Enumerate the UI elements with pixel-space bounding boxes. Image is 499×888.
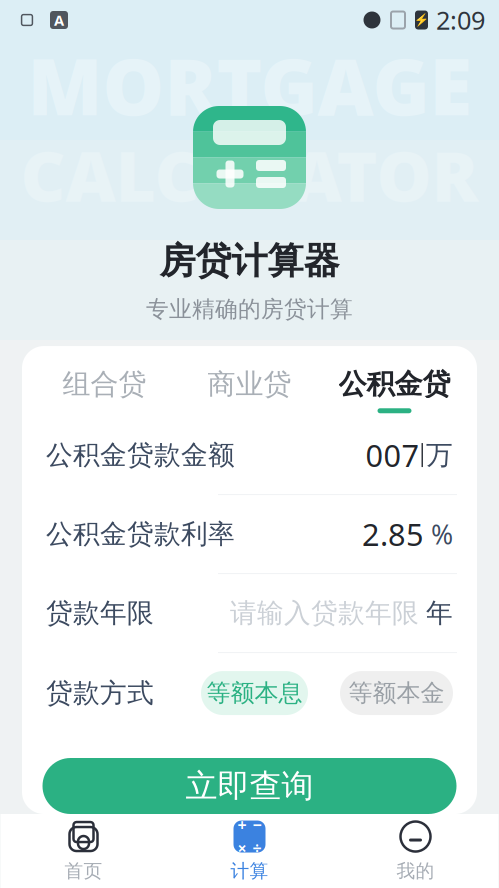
- staticText: −: [252, 814, 261, 835]
- staticText: +: [237, 814, 246, 835]
- staticText: 专业精确的房贷计算: [146, 295, 353, 323]
- staticText: 立即查询: [185, 766, 313, 806]
- staticText: 公积金贷款金额: [46, 439, 235, 471]
- staticText: ÷: [252, 837, 261, 859]
- button[interactable]: 我的: [332, 814, 498, 888]
- staticText: 万: [426, 439, 453, 471]
- staticText: A: [54, 10, 64, 30]
- staticText: %: [431, 516, 453, 552]
- staticText: ×: [237, 837, 246, 859]
- staticText: CALCULATOR: [20, 129, 478, 221]
- staticText: 等额本息: [206, 678, 302, 708]
- staticText: 商业贷: [207, 367, 291, 401]
- button[interactable]: 等额本息: [201, 671, 308, 715]
- button[interactable]: 首页: [0, 814, 166, 888]
- staticText: 007: [365, 435, 419, 475]
- staticText: 等额本金: [348, 678, 444, 708]
- button[interactable]: 组合贷: [32, 364, 177, 416]
- staticText: 我的: [396, 859, 434, 882]
- staticText: 贷款方式: [46, 677, 154, 709]
- staticText: 2.85: [362, 514, 424, 554]
- staticText: 计算: [230, 859, 268, 882]
- button[interactable]: 等额本金: [340, 671, 453, 715]
- button[interactable]: 立即查询: [42, 758, 456, 814]
- staticText: 公积金贷: [338, 367, 450, 401]
- staticText: MORTGAGE: [27, 34, 471, 137]
- staticText: 首页: [64, 859, 102, 882]
- staticText: 年: [426, 597, 453, 629]
- button[interactable]: 公积金贷款金额: [22, 416, 477, 494]
- staticText: 公积金贷款利率: [46, 518, 235, 550]
- staticText: 房贷计算器: [159, 239, 339, 283]
- staticText: 组合贷: [62, 367, 146, 401]
- button[interactable]: 公积金贷: [322, 364, 467, 416]
- staticText: 贷款年限: [46, 597, 154, 629]
- staticText: 2:09: [436, 3, 485, 37]
- button[interactable]: 贷款年限: [22, 574, 477, 652]
- button[interactable]: 商业贷: [177, 364, 322, 416]
- button[interactable]: 公积金贷款利率: [22, 495, 477, 573]
- staticText: 请输入贷款年限: [230, 597, 419, 629]
- staticText: ⚡: [414, 13, 429, 27]
- button[interactable]: +: [166, 814, 332, 888]
